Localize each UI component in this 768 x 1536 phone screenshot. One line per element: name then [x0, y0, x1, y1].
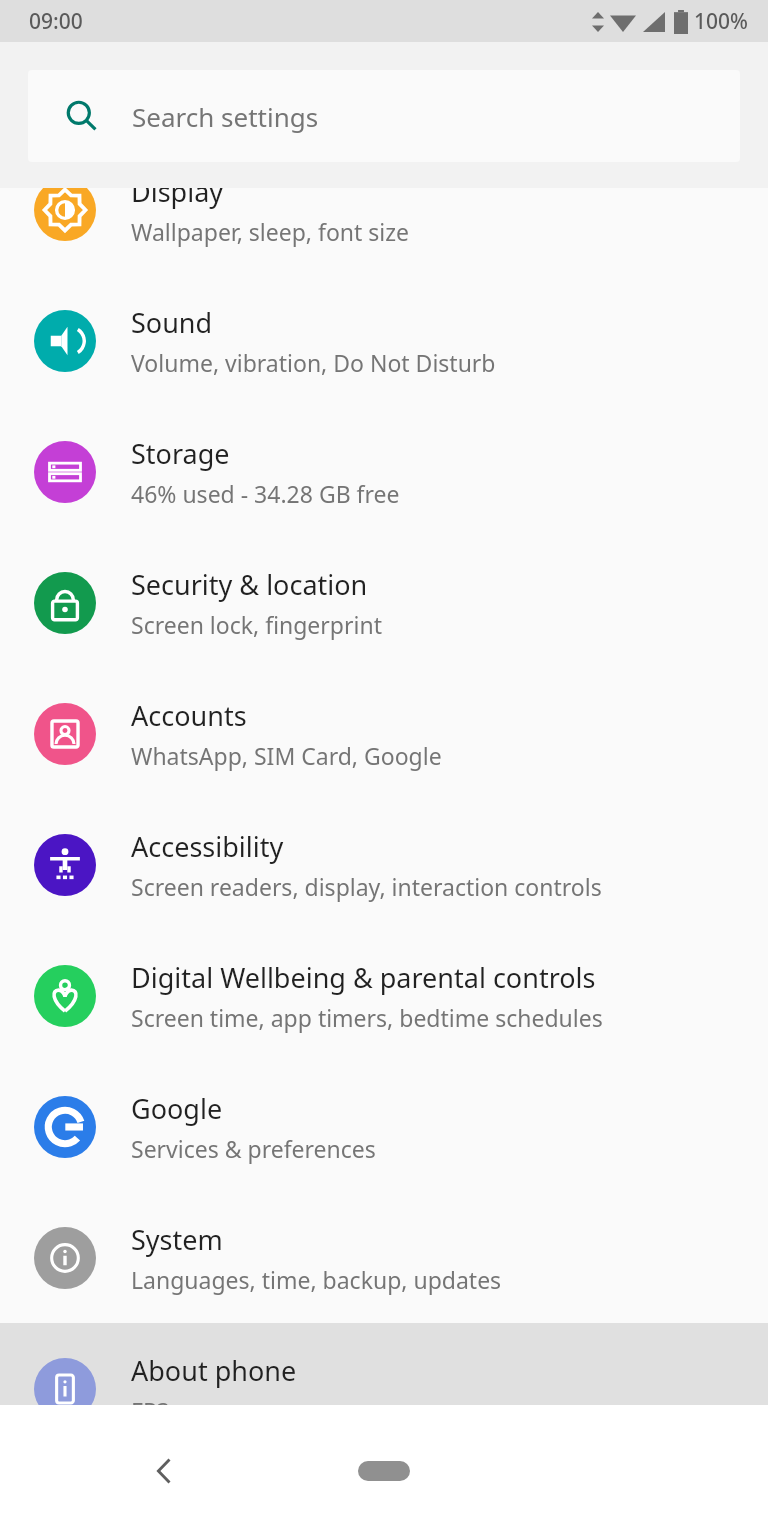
staticText: FP3 — [131, 1395, 171, 1426]
staticText: 09:00 — [29, 7, 83, 36]
staticText: Search settings — [132, 99, 319, 134]
button[interactable]: Sound — [0, 275, 768, 406]
staticText: 46% used - 34.28 GB free — [131, 478, 400, 509]
staticText: Wallpaper, sleep, font size — [131, 216, 410, 247]
staticText: Accounts — [131, 697, 247, 734]
staticText: Security & location — [131, 566, 368, 603]
staticText: Sound — [131, 304, 213, 341]
staticText: System — [131, 1221, 223, 1258]
staticText: WhatsApp, SIM Card, Google — [131, 740, 442, 771]
staticText: About phone — [131, 1352, 297, 1389]
button[interactable]: Search settings — [28, 70, 740, 162]
button[interactable]: Accessibility — [0, 799, 768, 930]
button[interactable]: Storage — [0, 406, 768, 537]
button[interactable]: Security & location — [0, 537, 768, 668]
staticText: Screen lock, fingerprint — [131, 609, 382, 640]
button[interactable]: Accounts — [0, 668, 768, 799]
staticText: 100% — [694, 7, 748, 36]
staticText: Digital Wellbeing & parental controls — [131, 959, 596, 996]
staticText: Languages, time, backup, updates — [131, 1264, 502, 1295]
button[interactable]: Google — [0, 1061, 768, 1192]
staticText: Accessibility — [131, 828, 284, 865]
staticText: Storage — [131, 435, 230, 472]
button[interactable]: About phone — [0, 1323, 768, 1454]
staticText: Volume, vibration, Do Not Disturb — [131, 347, 496, 378]
staticText: Services & preferences — [131, 1133, 376, 1164]
button[interactable]: Back — [130, 1436, 200, 1506]
staticText: Screen time, app timers, bedtime schedul… — [131, 1002, 603, 1033]
button[interactable]: Display — [0, 144, 768, 275]
staticText: Screen readers, display, interaction con… — [131, 871, 602, 902]
button[interactable]: Home — [339, 1444, 429, 1498]
staticText: Google — [131, 1090, 223, 1127]
button[interactable]: System — [0, 1192, 768, 1323]
button[interactable]: Digital Wellbeing & parental controls — [0, 930, 768, 1061]
staticText: Display — [131, 173, 224, 210]
